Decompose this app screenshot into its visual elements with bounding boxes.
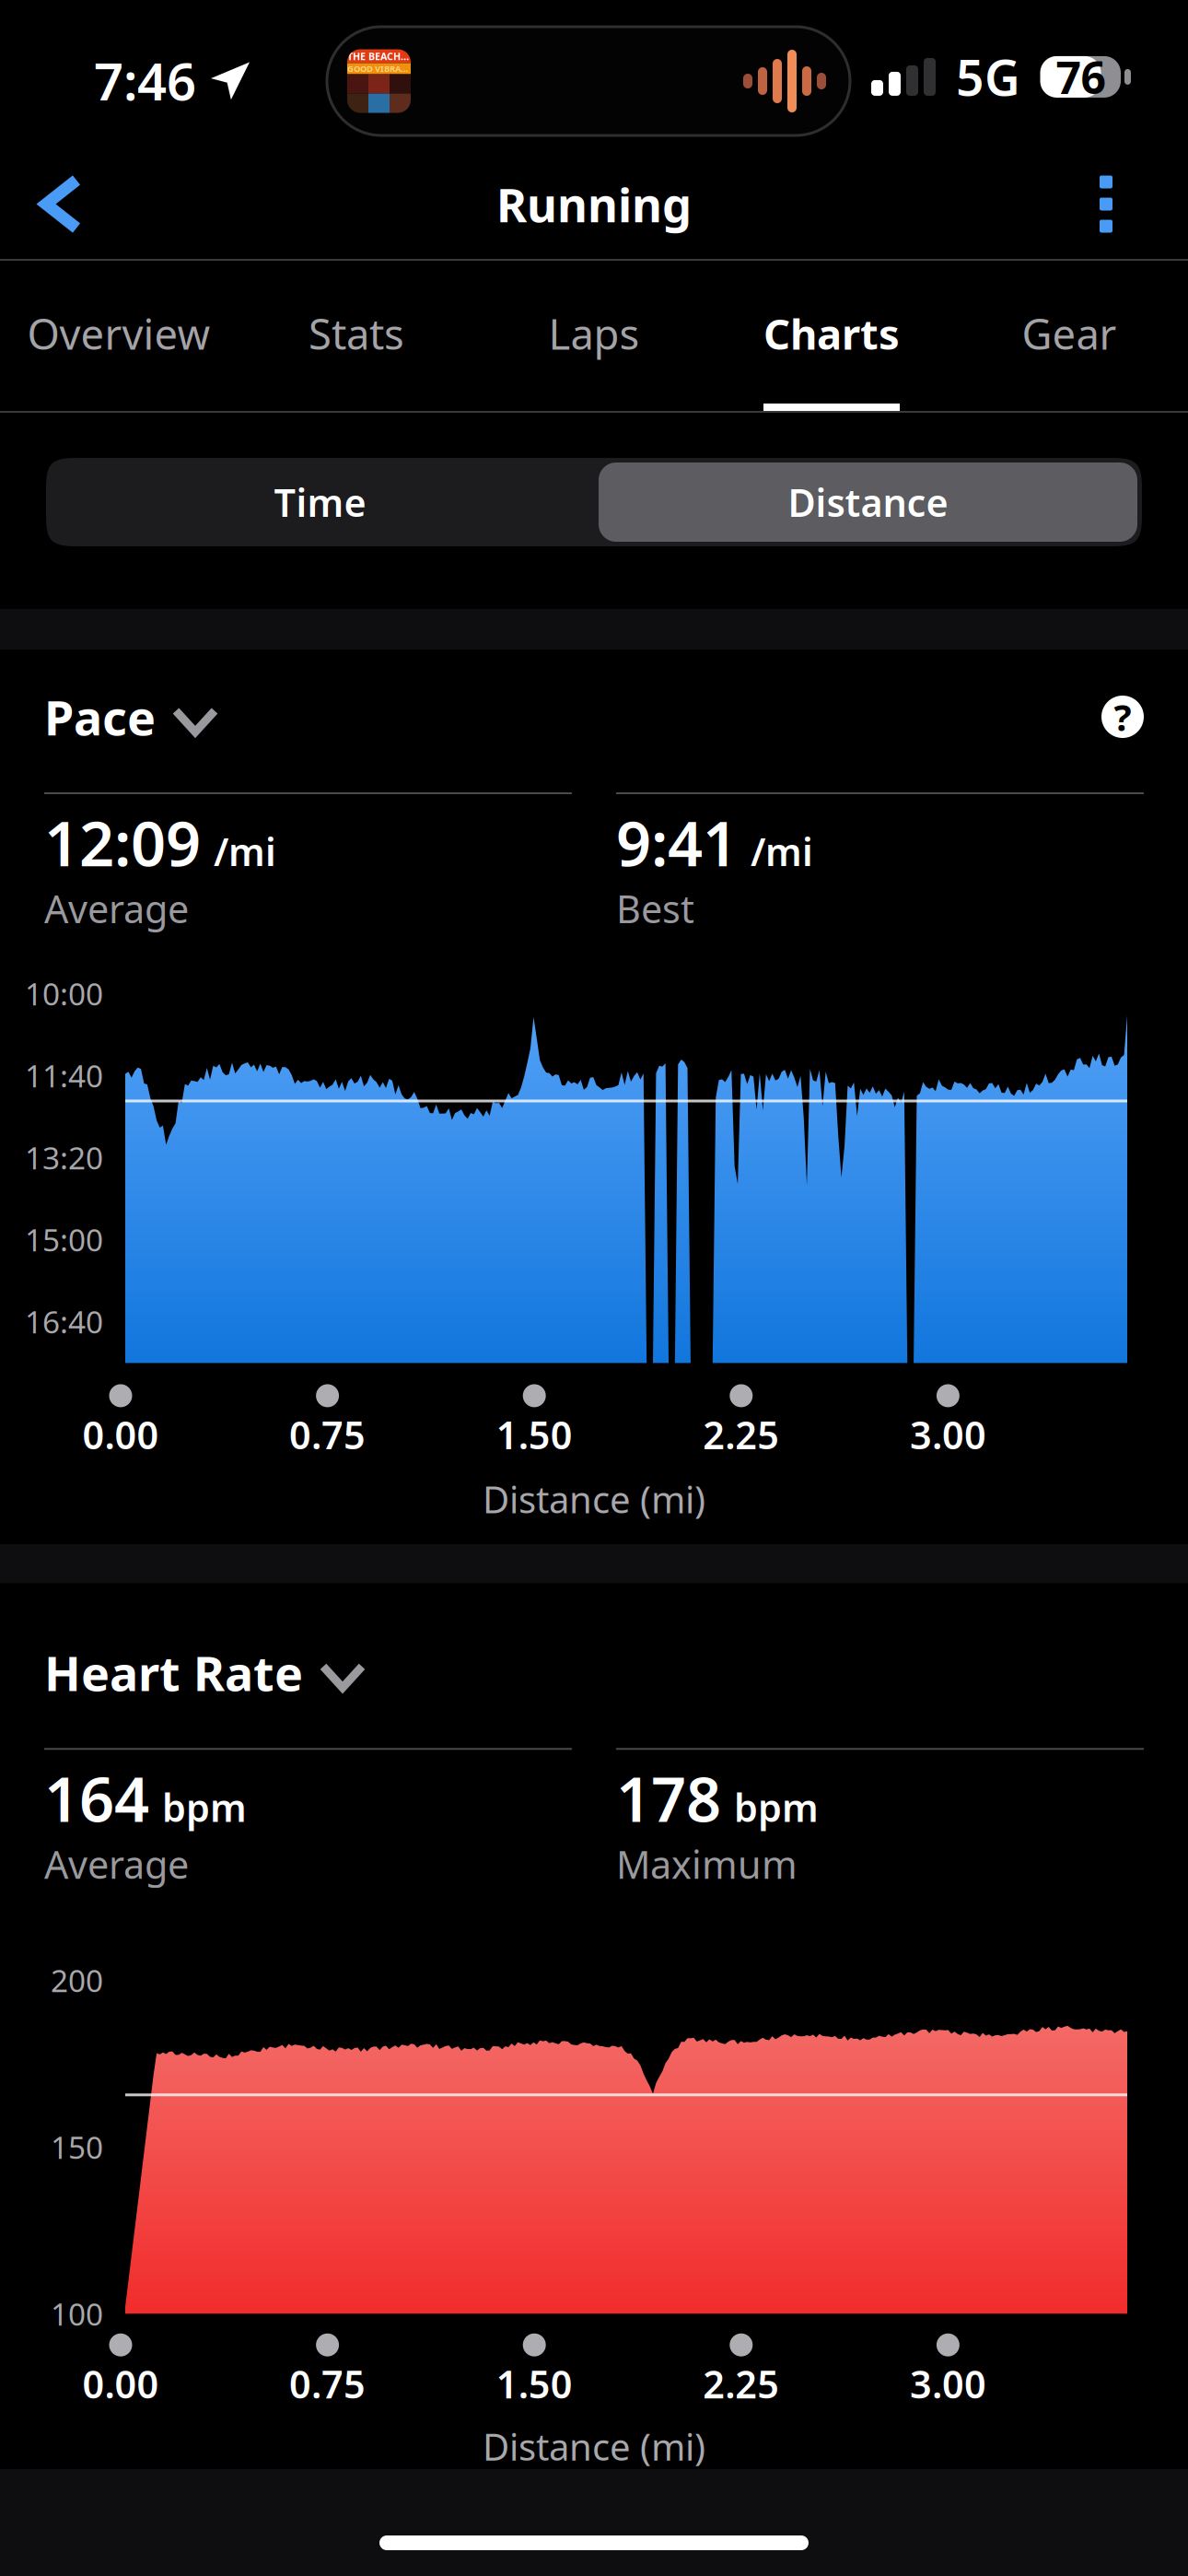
staticText: Distance (mi): [483, 2422, 705, 2471]
staticText: ?: [1114, 692, 1131, 741]
button[interactable]: Time: [46, 458, 594, 546]
staticText: Gear: [1022, 306, 1117, 361]
staticText: 0.00: [82, 1409, 159, 1460]
button[interactable]: Overview: [0, 261, 238, 413]
staticText: GOOD VIBRATIONS: [347, 63, 411, 74]
staticText: /mi: [214, 826, 276, 877]
staticText: 0.75: [289, 1409, 366, 1460]
staticText: bpm: [162, 1782, 247, 1832]
staticText: 11:40: [25, 1055, 103, 1096]
staticText: Pace: [44, 685, 156, 749]
staticText: Distance: [788, 477, 948, 527]
button[interactable]: Heart Rate: [44, 1641, 362, 1704]
staticText: 12:09: [44, 802, 201, 883]
button[interactable]: More options: [1057, 150, 1188, 258]
staticText: 200: [51, 1960, 103, 2001]
staticText: 178: [616, 1757, 721, 1839]
staticText: 5G: [956, 44, 1020, 109]
staticText: Laps: [548, 306, 640, 361]
staticText: Maximum: [616, 1839, 798, 1889]
staticText: Average: [44, 1839, 189, 1889]
button[interactable]: Distance: [594, 458, 1142, 546]
staticText: 3.00: [910, 1409, 986, 1460]
staticText: 0.75: [289, 2358, 366, 2409]
staticText: 3.00: [910, 2358, 986, 2409]
button[interactable]: Pace: [44, 685, 215, 749]
staticText: bpm: [734, 1782, 819, 1832]
staticText: Running: [496, 173, 692, 235]
staticText: 164: [44, 1757, 149, 1839]
staticText: Heart Rate: [44, 1641, 303, 1704]
staticText: Distance (mi): [483, 1474, 705, 1523]
staticText: 100: [51, 2293, 103, 2334]
staticText: Best: [616, 883, 694, 934]
staticText: Overview: [27, 306, 210, 361]
staticText: 10:00: [25, 973, 103, 1014]
staticText: 2.25: [703, 1409, 779, 1460]
button[interactable]: Stats: [238, 261, 475, 413]
staticText: 15:00: [25, 1219, 103, 1260]
staticText: 7:46: [94, 46, 196, 115]
staticText: Time: [274, 477, 366, 527]
staticText: 150: [51, 2126, 103, 2167]
staticText: Average: [44, 883, 189, 934]
staticText: 1.50: [496, 2358, 573, 2409]
staticText: 13:20: [25, 1137, 103, 1178]
button[interactable]: Back: [0, 149, 121, 259]
staticText: THE BEACH BOYS: [347, 50, 411, 63]
staticText: Stats: [309, 306, 404, 361]
staticText: 2.25: [703, 2358, 779, 2409]
staticText: 9:41: [616, 802, 738, 883]
staticText: Charts: [763, 306, 900, 361]
button[interactable]: Laps: [475, 261, 713, 413]
staticText: /mi: [751, 826, 813, 877]
staticText: 76: [1056, 47, 1106, 106]
staticText: 16:40: [25, 1301, 103, 1342]
button[interactable]: Help: [1101, 696, 1144, 738]
button[interactable]: Gear: [950, 261, 1188, 413]
staticText: 0.00: [82, 2358, 159, 2409]
button[interactable]: Charts: [713, 261, 950, 413]
staticText: 1.50: [496, 1409, 573, 1460]
